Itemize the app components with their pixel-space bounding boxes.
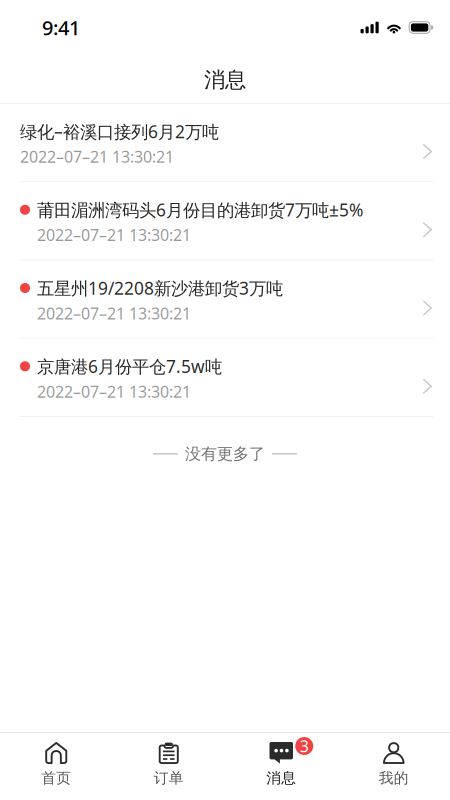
button[interactable]: 京唐港6月份平仓7.5w吨	[0, 339, 450, 416]
button[interactable]: 我的	[337, 733, 450, 800]
staticText: 消息	[266, 769, 296, 787]
button[interactable]: 五星州19/2208新沙港卸货3万吨	[0, 260, 450, 338]
staticText: 五星州19/2208新沙港卸货3万吨	[37, 276, 283, 299]
staticText: 绿化–裕溪口接列6月2万吨	[20, 120, 219, 143]
button[interactable]: 莆田湄洲湾码头6月份目的港卸货7万吨±5%	[0, 182, 450, 260]
button[interactable]: 绿化–裕溪口接列6月2万吨	[0, 104, 450, 181]
staticText: 首页	[41, 769, 71, 787]
staticText: 订单	[154, 769, 184, 787]
staticText: 2022–07–21 13:30:21	[37, 302, 191, 324]
staticText: 9:41	[42, 14, 80, 41]
staticText: 我的	[379, 769, 409, 787]
button[interactable]: 首页	[0, 733, 112, 800]
staticText: 2022–07–21 13:30:21	[20, 146, 174, 167]
staticText: 2022–07–21 13:30:21	[37, 381, 191, 402]
staticText: 消息	[204, 67, 246, 93]
staticText: 2022–07–21 13:30:21	[37, 224, 191, 245]
staticText: 没有更多了	[185, 444, 265, 464]
button[interactable]: 3	[225, 733, 337, 800]
staticText: 3	[300, 735, 309, 757]
button[interactable]: 订单	[112, 733, 225, 800]
staticText: 京唐港6月份平仓7.5w吨	[37, 355, 222, 378]
staticText: 莆田湄洲湾码头6月份目的港卸货7万吨±5%	[37, 198, 363, 221]
